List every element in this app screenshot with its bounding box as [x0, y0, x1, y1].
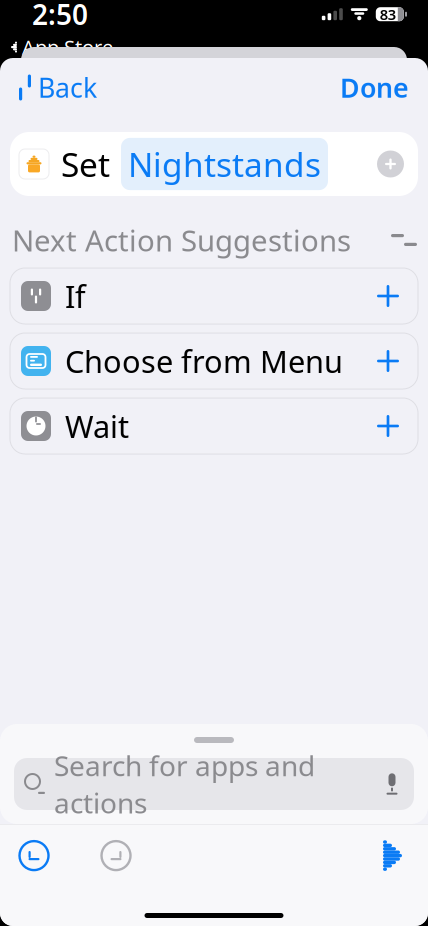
staticText: Set [61, 142, 110, 186]
staticText: 83 [380, 4, 396, 24]
staticText: Search for apps and actions [54, 747, 315, 821]
staticText: 2:50 [32, 0, 88, 33]
staticText: Done [340, 70, 409, 105]
staticText: Back [38, 70, 97, 105]
staticText: Choose from Menu [65, 341, 343, 381]
button[interactable]: Run shortcut [374, 832, 412, 880]
staticText: Wait [65, 406, 129, 446]
staticText: App Store [22, 34, 113, 60]
button[interactable]: Set [10, 132, 418, 196]
button[interactable]: Add Choose from Menu action [10, 333, 418, 389]
button[interactable]: Add Wait action [10, 398, 418, 454]
button[interactable]: Search for apps and actions [14, 758, 414, 810]
button[interactable]: Done [332, 61, 417, 114]
staticText: If [65, 276, 86, 316]
button[interactable]: Add If action [10, 268, 418, 324]
staticText: Next Action Suggestions [12, 220, 351, 259]
button[interactable]: Undo [9, 831, 59, 881]
button[interactable]: Remove action [377, 150, 404, 177]
button[interactable]: Redo [91, 831, 141, 881]
button[interactable]: Next Action Suggestions [12, 223, 416, 257]
staticText: Nightstands [128, 142, 321, 186]
button[interactable]: Back [11, 61, 105, 114]
